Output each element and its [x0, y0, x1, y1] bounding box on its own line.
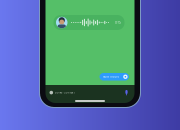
button[interactable]: Solve Context: [45, 86, 134, 100]
button[interactable]: 0:15: [53, 15, 124, 30]
button[interactable]: mute hours: [99, 73, 129, 80]
staticText: 0:15: [115, 21, 121, 24]
staticText: mute hours: [102, 75, 118, 78]
staticText: Solve Context: [55, 91, 75, 94]
button[interactable]: Record voice message: [123, 90, 129, 96]
